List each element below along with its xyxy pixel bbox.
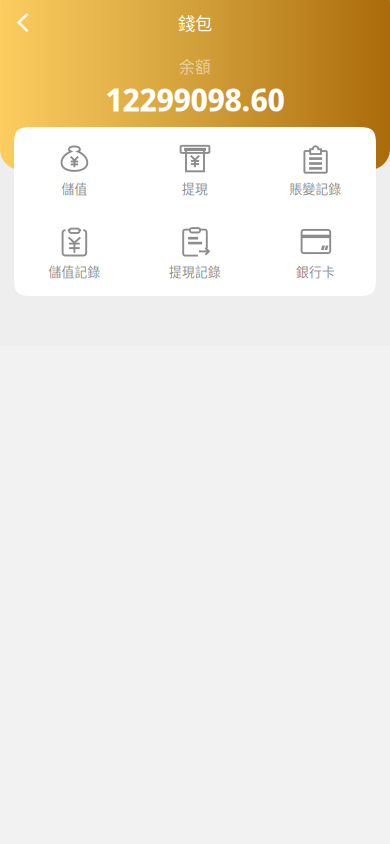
button[interactable]: 儲值記錄 (14, 226, 135, 278)
button[interactable]: Back (0, 0, 46, 45)
staticText: 提現記錄 (169, 262, 221, 280)
staticText: 12299098.60 (105, 77, 284, 121)
button[interactable]: 儲值 (14, 143, 135, 195)
button[interactable]: 提現記錄 (135, 226, 255, 278)
staticText: 賬變記錄 (290, 179, 342, 197)
staticText: 儲值 (61, 179, 87, 197)
staticText: 銀行卡 (296, 262, 335, 280)
staticText: 余額 (179, 55, 211, 77)
button[interactable]: 提現 (135, 143, 255, 195)
staticText: 提現 (182, 179, 208, 197)
button[interactable]: 銀行卡 (255, 226, 376, 278)
button[interactable]: 賬變記錄 (255, 143, 376, 195)
staticText: 儲值記錄 (48, 262, 100, 280)
staticText: 錢包 (178, 10, 212, 35)
